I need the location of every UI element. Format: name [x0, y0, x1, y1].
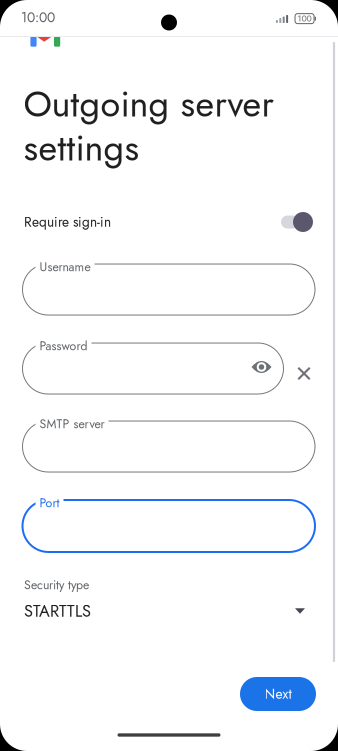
staticText: 10:00 [21, 8, 55, 27]
button[interactable]: Clear password [291, 361, 316, 386]
button[interactable]: Require sign-in [24, 208, 313, 236]
staticText: Next [264, 684, 291, 704]
staticText: Require sign-in [24, 212, 111, 232]
staticText: STARTTLS [24, 599, 91, 623]
staticText: Username [39, 258, 90, 276]
staticText: Password [39, 337, 87, 355]
button[interactable]: Next [240, 677, 316, 711]
staticText: SMTP server [39, 415, 104, 433]
staticText: Security type [24, 576, 89, 594]
staticText: Outgoing server [23, 78, 273, 130]
staticText: 100 [298, 12, 312, 25]
button[interactable]: STARTTLS [24, 598, 305, 624]
staticText: Port [39, 494, 59, 512]
staticText: settings [23, 122, 139, 174]
